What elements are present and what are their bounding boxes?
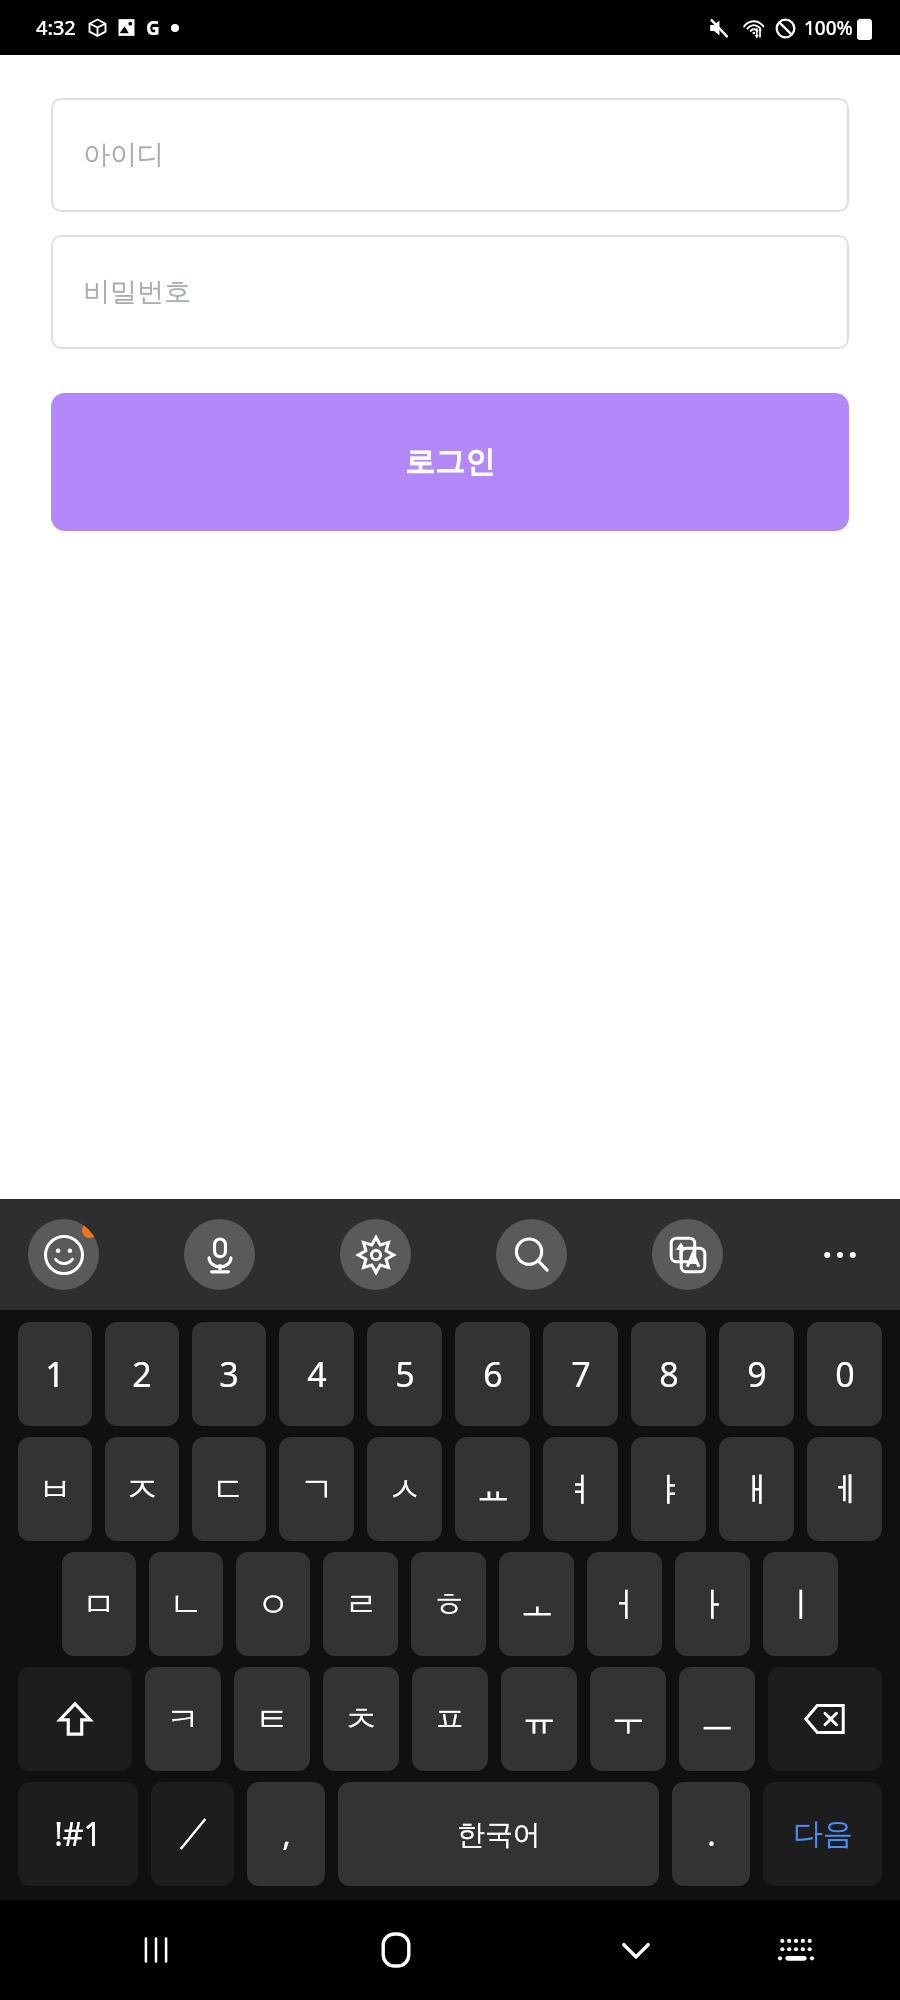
staticText: ㅐ	[740, 1468, 774, 1511]
button[interactable]: ㅁ	[62, 1552, 136, 1656]
staticText: 4	[307, 1351, 327, 1397]
button[interactable]: 4	[279, 1322, 354, 1426]
button[interactable]: Backspace	[768, 1667, 882, 1771]
staticText: 7	[571, 1351, 591, 1397]
button[interactable]: ㅇ	[236, 1552, 310, 1656]
button[interactable]: ㅏ	[675, 1552, 750, 1656]
button[interactable]: Home	[356, 1910, 436, 1990]
staticText: ㅛ	[476, 1468, 510, 1511]
button[interactable]: ㅠ	[501, 1667, 577, 1771]
button[interactable]: ㅐ	[719, 1437, 794, 1541]
staticText: ㅡ	[700, 1698, 734, 1741]
button[interactable]: 7	[543, 1322, 618, 1426]
button[interactable]: ㄷ	[192, 1437, 266, 1541]
button[interactable]: Korean English toggle	[151, 1782, 234, 1886]
staticText: ,	[282, 1812, 291, 1856]
staticText: ㅣ	[784, 1583, 818, 1626]
button[interactable]: 2	[105, 1322, 179, 1426]
button[interactable]: 다음	[763, 1782, 882, 1886]
staticText: 다음	[793, 1815, 853, 1853]
staticText: 6	[483, 1351, 503, 1397]
staticText: ㄹ	[344, 1583, 378, 1626]
button[interactable]: ㅜ	[590, 1667, 666, 1771]
staticText: 비밀번호	[83, 275, 191, 309]
button[interactable]: ㅎ	[411, 1552, 486, 1656]
staticText: ㅊ	[344, 1698, 378, 1741]
staticText: 0	[835, 1351, 855, 1397]
button[interactable]: 9	[719, 1322, 794, 1426]
staticText: 로그인	[405, 443, 495, 481]
staticText: ㄱ	[300, 1468, 334, 1511]
button[interactable]: More options	[808, 1223, 872, 1287]
button[interactable]: ㅕ	[543, 1437, 618, 1541]
button[interactable]: Search	[496, 1219, 567, 1290]
button[interactable]: ㅊ	[323, 1667, 399, 1771]
staticText: !#1	[54, 1812, 102, 1856]
staticText: .	[707, 1812, 716, 1856]
button[interactable]: ㄹ	[323, 1552, 398, 1656]
button[interactable]: !#1	[18, 1782, 138, 1886]
staticText: ㅓ	[608, 1583, 642, 1626]
button[interactable]: ㅡ	[679, 1667, 755, 1771]
staticText: 9	[747, 1351, 767, 1397]
staticText: 2	[132, 1351, 152, 1397]
staticText: 한국어	[457, 1817, 541, 1852]
button[interactable]: ㅓ	[587, 1552, 662, 1656]
staticText: 8	[659, 1351, 679, 1397]
staticText: G	[146, 15, 160, 41]
staticText: ㅍ	[433, 1698, 467, 1741]
button[interactable]: 3	[192, 1322, 266, 1426]
button[interactable]: ㅍ	[412, 1667, 488, 1771]
staticText: ㅎ	[432, 1583, 466, 1626]
button[interactable]: Settings	[340, 1219, 411, 1290]
staticText: ㄴ	[169, 1583, 203, 1626]
button[interactable]: 1	[18, 1322, 92, 1426]
button[interactable]: 8	[631, 1322, 706, 1426]
staticText: ㅁ	[82, 1583, 116, 1626]
staticText: 5	[395, 1351, 415, 1397]
staticText: 아이디	[83, 138, 164, 172]
button[interactable]: Hide keyboard	[596, 1910, 676, 1990]
staticText: ㅈ	[125, 1468, 159, 1511]
button[interactable]: 5	[367, 1322, 442, 1426]
button[interactable]: Shift	[18, 1667, 132, 1771]
button[interactable]: 로그인	[51, 393, 849, 531]
button[interactable]: Translate	[652, 1219, 723, 1290]
button[interactable]: ,	[247, 1782, 325, 1886]
button[interactable]: ㅋ	[145, 1667, 221, 1771]
button[interactable]: ㅗ	[499, 1552, 574, 1656]
button[interactable]: ㄱ	[279, 1437, 354, 1541]
button[interactable]: .	[672, 1782, 750, 1886]
button[interactable]: Recent apps	[116, 1910, 196, 1990]
button[interactable]: ㅅ	[367, 1437, 442, 1541]
button[interactable]: 비밀번호	[51, 235, 849, 349]
staticText: ㅗ	[520, 1583, 554, 1626]
staticText: 100%	[804, 15, 853, 41]
staticText: ㅌ	[255, 1698, 289, 1741]
button[interactable]: ㅑ	[631, 1437, 706, 1541]
staticText: ㅏ	[696, 1583, 730, 1626]
button[interactable]: ㅂ	[18, 1437, 92, 1541]
staticText: ㅅ	[388, 1468, 422, 1511]
staticText: 3	[219, 1351, 239, 1397]
button[interactable]: ㅣ	[763, 1552, 838, 1656]
staticText: ㅔ	[828, 1468, 862, 1511]
staticText: ㅕ	[564, 1468, 598, 1511]
button[interactable]: 0	[807, 1322, 882, 1426]
button[interactable]: ㅔ	[807, 1437, 882, 1541]
staticText: ㄷ	[212, 1468, 246, 1511]
button[interactable]: ㅈ	[105, 1437, 179, 1541]
button[interactable]: ㄴ	[149, 1552, 223, 1656]
staticText: ㅂ	[38, 1468, 72, 1511]
button[interactable]: 한국어	[338, 1782, 659, 1886]
staticText: ㅜ	[611, 1698, 645, 1741]
button[interactable]: 아이디	[51, 98, 849, 212]
staticText: 1	[45, 1351, 65, 1397]
button[interactable]: Change keyboard	[756, 1910, 836, 1990]
button[interactable]: Emoji	[28, 1219, 99, 1290]
button[interactable]: ㅌ	[234, 1667, 310, 1771]
button[interactable]: 6	[455, 1322, 530, 1426]
button[interactable]: ㅛ	[455, 1437, 530, 1541]
button[interactable]: Voice input	[184, 1219, 255, 1290]
staticText: ㅇ	[256, 1583, 290, 1626]
